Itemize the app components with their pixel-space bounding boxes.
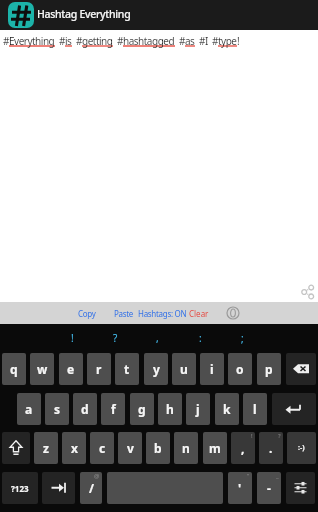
staticText: f (111, 401, 116, 417)
staticText: s (54, 401, 61, 417)
staticText: : (199, 331, 202, 345)
staticText: . (269, 440, 273, 456)
button[interactable]: y (144, 353, 168, 385)
button[interactable]: s (45, 393, 69, 425)
button[interactable] (272, 393, 316, 425)
button[interactable] (42, 472, 75, 504)
staticText: # (76, 34, 82, 48)
button[interactable]: g (130, 393, 154, 425)
button[interactable] (286, 472, 315, 504)
button[interactable]: Paste (114, 302, 134, 324)
staticText: " (247, 472, 250, 480)
button[interactable]: ?123 (2, 472, 38, 504)
button[interactable]: w (30, 353, 54, 385)
staticText: - (267, 480, 271, 496)
button[interactable]: u (172, 353, 196, 385)
staticText: # (179, 34, 185, 48)
button[interactable]: o (228, 353, 252, 385)
button[interactable]: d (73, 393, 97, 425)
button[interactable] (8, 2, 34, 28)
button[interactable]: q (2, 353, 26, 385)
staticText: ! (237, 34, 240, 48)
staticText: o (236, 361, 244, 377)
button[interactable]: - (257, 472, 281, 504)
staticText: v (127, 440, 134, 456)
staticText: ; (241, 331, 244, 345)
staticText: q (10, 361, 18, 377)
button[interactable]: , (231, 432, 255, 464)
staticText: g (138, 401, 146, 417)
staticText: # (199, 34, 205, 48)
staticText: # (59, 34, 65, 48)
button[interactable]: f (101, 393, 125, 425)
button[interactable]: p (257, 353, 281, 385)
staticText: d (81, 401, 89, 417)
staticText: b (154, 440, 162, 456)
staticText: n (182, 440, 190, 456)
staticText: ? (278, 432, 281, 440)
staticText: w (37, 361, 48, 377)
button[interactable] (301, 285, 315, 299)
staticText: type (218, 34, 237, 48)
button[interactable]: Hashtags: ON (138, 302, 187, 324)
staticText: l (253, 401, 257, 417)
button[interactable] (226, 306, 240, 320)
button[interactable]: m (203, 432, 227, 464)
staticText: I (205, 34, 208, 48)
staticText: k (223, 401, 231, 417)
button[interactable]: t (115, 353, 139, 385)
button[interactable] (286, 353, 316, 385)
staticText: ? (113, 331, 118, 345)
staticText: # (117, 34, 123, 48)
staticText: getting (82, 34, 113, 48)
button[interactable]: l (243, 393, 267, 425)
staticText: :-) (298, 443, 305, 453)
button[interactable]: r (87, 353, 111, 385)
staticText: ! (71, 331, 74, 345)
staticText: i (210, 361, 214, 377)
button[interactable]: Copy (78, 302, 96, 324)
staticText: h (166, 401, 174, 417)
staticText: Hashtags: ON (138, 308, 187, 319)
staticText: x (71, 440, 78, 456)
staticText: # (212, 34, 218, 48)
button[interactable]: x (62, 432, 86, 464)
staticText: Everything (9, 34, 55, 48)
staticText: c (99, 440, 106, 456)
staticText: y (153, 361, 160, 377)
button[interactable]: i (200, 353, 224, 385)
button[interactable]: j (186, 393, 210, 425)
button[interactable] (2, 432, 30, 464)
button[interactable]: :-) (287, 432, 316, 464)
staticText: @ (94, 472, 100, 480)
staticText: z (43, 440, 49, 456)
staticText: _ (276, 472, 279, 480)
staticText: Clear (189, 308, 209, 319)
button[interactable]: e (59, 353, 83, 385)
staticText: as (185, 34, 195, 48)
button[interactable]: z (34, 432, 58, 464)
button[interactable]: n (174, 432, 198, 464)
staticText: # (3, 34, 9, 48)
button[interactable]: ' (228, 472, 252, 504)
button[interactable]: c (90, 432, 114, 464)
button[interactable]: k (215, 393, 239, 425)
button[interactable]: b (146, 432, 170, 464)
staticText: Copy (78, 308, 96, 319)
staticText: p (265, 361, 273, 377)
staticText: e (67, 361, 75, 377)
button[interactable]: h (158, 393, 182, 425)
button[interactable]: . (259, 432, 283, 464)
staticText: ! (251, 432, 253, 440)
button[interactable]: Clear (189, 302, 209, 324)
button[interactable]: / (80, 472, 102, 504)
staticText: ?123 (11, 483, 29, 494)
staticText: j (196, 401, 200, 417)
staticText: , (241, 440, 245, 456)
button[interactable]: a (17, 393, 41, 425)
staticText: a (25, 401, 33, 417)
staticText: r (96, 361, 102, 377)
staticText: ' (238, 480, 242, 496)
button[interactable]: v (118, 432, 142, 464)
